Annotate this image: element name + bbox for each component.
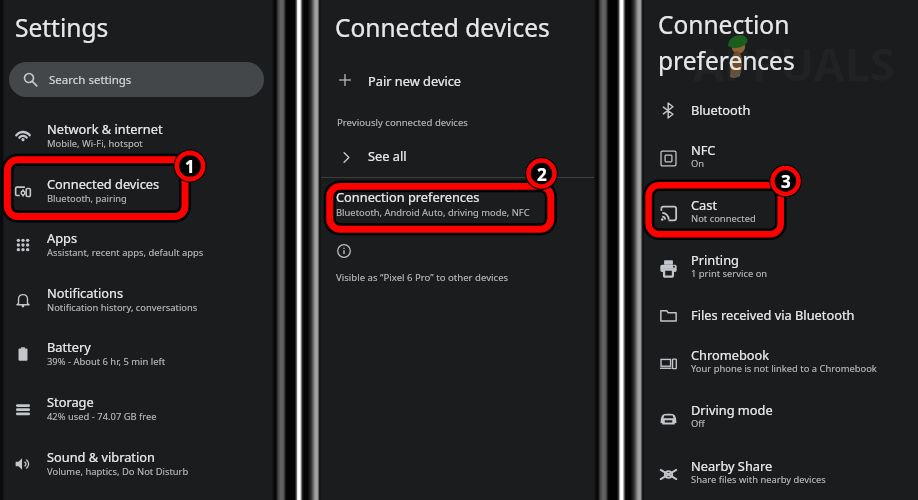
staticText: 3 — [781, 170, 791, 193]
staticText: Connection preferences — [336, 188, 480, 205]
staticText: On — [691, 157, 705, 170]
staticText: Mobile, Wi-Fi, hotspot — [47, 137, 143, 150]
button[interactable]: Search settings — [9, 62, 264, 97]
button[interactable]: Connection preferences — [321, 185, 594, 229]
button[interactable]: Chromebook — [644, 346, 918, 382]
staticText: Connected devices — [335, 11, 550, 44]
staticText: Connected devices — [47, 175, 160, 192]
button[interactable]: Connected devices — [0, 176, 272, 226]
button[interactable]: Printing — [644, 251, 918, 287]
button[interactable]: Sound & vibration — [0, 449, 272, 499]
staticText: Printing — [691, 251, 739, 268]
staticText: 1 print service on — [691, 267, 768, 280]
button[interactable]: Nearby Share — [644, 457, 918, 493]
button[interactable]: Storage — [0, 394, 272, 444]
staticText: Previously connected devices — [337, 116, 468, 129]
button[interactable]: Files received via Bluetooth — [644, 306, 918, 328]
staticText: Apps — [47, 229, 78, 246]
staticText: Off — [691, 417, 705, 430]
button[interactable]: Pair new device — [321, 66, 594, 100]
button[interactable]: Battery — [0, 339, 272, 389]
button[interactable]: See all — [321, 142, 594, 174]
staticText: Connection — [658, 8, 790, 41]
staticText: APPUALS — [693, 33, 895, 94]
staticText: See all — [368, 147, 407, 164]
staticText: preferences — [658, 44, 795, 77]
staticText: 1 — [185, 155, 195, 178]
staticText: NFC — [691, 141, 716, 158]
button[interactable]: Driving mode — [644, 401, 918, 437]
staticText: Bluetooth, pairing — [47, 192, 127, 205]
staticText: Sound & vibration — [47, 448, 155, 465]
staticText: Visible as “Pixel 6 Pro” to other device… — [336, 271, 509, 284]
staticText: Cast — [691, 196, 718, 213]
button[interactable]: Cast — [644, 196, 918, 232]
staticText: Storage — [47, 393, 94, 410]
button[interactable]: Apps — [0, 230, 272, 280]
staticText: Chromebook — [691, 346, 770, 363]
staticText: Your phone is not linked to a Chromebook — [691, 362, 877, 375]
button[interactable]: Bluetooth — [644, 101, 918, 123]
staticText: Nearby Share — [691, 457, 773, 474]
button[interactable]: Notifications — [0, 285, 272, 335]
staticText: Notification history, conversations — [47, 301, 198, 314]
staticText: 39% - About 6 hr, 5 min left — [47, 355, 166, 368]
staticText: Files received via Bluetooth — [691, 306, 855, 323]
staticText: Not connected — [691, 212, 756, 225]
staticText: Driving mode — [691, 401, 773, 418]
staticText: 2 — [537, 163, 547, 186]
staticText: Share files with nearby devices — [691, 473, 826, 486]
staticText: Battery — [47, 338, 91, 355]
staticText: Settings — [15, 11, 109, 44]
staticText: Network & internet — [47, 120, 163, 137]
staticText: Search settings — [49, 72, 132, 88]
staticText: Bluetooth, Android Auto, driving mode, N… — [336, 206, 530, 219]
button[interactable]: NFC — [644, 141, 918, 177]
staticText: Assistant, recent apps, default apps — [47, 246, 204, 259]
staticText: Notifications — [47, 284, 124, 301]
button[interactable]: Network & internet — [0, 121, 272, 171]
staticText: Pair new device — [368, 72, 462, 89]
staticText: 42% used - 74.07 GB free — [47, 410, 157, 423]
staticText: Bluetooth — [691, 101, 751, 118]
staticText: Volume, haptics, Do Not Disturb — [47, 465, 189, 478]
